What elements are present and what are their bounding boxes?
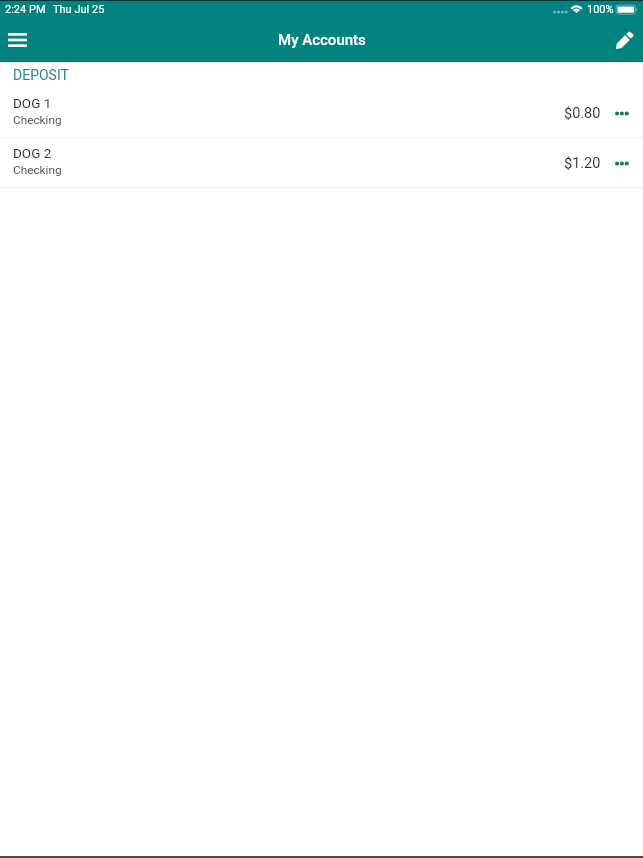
- staticText: Checking: [13, 113, 62, 127]
- button[interactable]: DOG 2: [0, 138, 643, 187]
- staticText: Thu Jul 25: [53, 3, 105, 16]
- button[interactable]: DOG 1: [0, 88, 643, 137]
- staticText: 2:24 PM: [5, 3, 46, 16]
- staticText: $0.80: [564, 105, 601, 122]
- staticText: $1.20: [564, 155, 601, 172]
- staticText: My Accounts: [278, 31, 366, 49]
- staticText: Checking: [13, 163, 62, 177]
- staticText: DOG 2: [13, 145, 52, 161]
- button[interactable]: Menu: [0, 19, 34, 62]
- button[interactable]: Edit: [605, 19, 643, 62]
- staticText: DOG 1: [13, 95, 52, 111]
- staticText: DEPOSIT: [13, 67, 69, 83]
- button[interactable]: More options: [601, 88, 643, 137]
- button[interactable]: More options: [601, 138, 643, 187]
- staticText: 100%: [587, 3, 614, 16]
